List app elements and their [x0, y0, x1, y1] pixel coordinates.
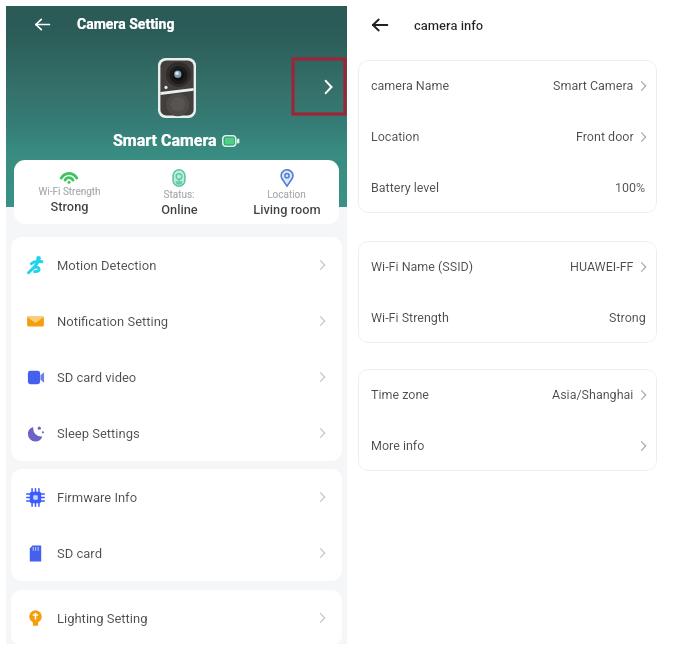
staticText: camera Name — [371, 78, 450, 93]
staticText: More info — [371, 438, 425, 453]
staticText: Camera Setting — [77, 16, 175, 32]
button[interactable]: Location — [358, 111, 657, 162]
staticText: Sleep Settings — [57, 426, 140, 441]
staticText: Wi-Fi Strength — [38, 186, 101, 198]
staticText: Smart Camera — [113, 131, 217, 150]
button[interactable]: Device details — [293, 59, 345, 114]
button[interactable]: Sleep Settings — [11, 405, 342, 461]
staticText: camera info — [414, 18, 484, 33]
staticText: Wi-Fi Name (SSID) — [371, 259, 474, 274]
button[interactable]: SD card video — [11, 349, 342, 405]
button[interactable]: Back — [368, 13, 392, 37]
button[interactable]: Battery level — [358, 162, 657, 213]
staticText: SD card — [57, 546, 102, 561]
staticText: SD card video — [57, 370, 137, 385]
staticText: Lighting Setting — [57, 611, 148, 626]
staticText: Location — [371, 129, 420, 144]
button[interactable]: Wi-Fi Strength — [358, 292, 657, 343]
staticText: Living room — [253, 202, 321, 217]
button[interactable]: Firmware Info — [11, 469, 342, 525]
button[interactable]: More info — [358, 420, 657, 471]
button[interactable]: Wi-Fi Name (SSID) — [358, 241, 657, 292]
button[interactable]: Notification Setting — [11, 293, 342, 349]
staticText: Strong — [609, 310, 646, 325]
staticText: 100% — [615, 180, 646, 195]
button[interactable]: Motion Detection — [11, 237, 342, 293]
staticText: Online — [161, 202, 198, 217]
staticText: HUAWEI-FF — [570, 259, 634, 274]
staticText: Firmware Info — [57, 490, 138, 505]
button[interactable]: Time zone — [358, 369, 657, 420]
button[interactable]: camera Name — [358, 60, 657, 111]
staticText: Front door — [576, 129, 634, 144]
staticText: Location — [267, 189, 306, 201]
button[interactable]: SD card — [11, 525, 342, 581]
button[interactable]: Back — [31, 13, 53, 35]
staticText: Notification Setting — [57, 314, 169, 329]
staticText: Asia/Shanghai — [552, 387, 634, 402]
staticText: Status: — [163, 189, 195, 201]
staticText: Time zone — [371, 387, 429, 402]
staticText: Battery level — [371, 180, 439, 195]
button[interactable]: Lighting Setting — [11, 590, 342, 646]
staticText: Motion Detection — [57, 258, 157, 273]
staticText: Smart Camera — [553, 78, 634, 93]
staticText: Wi-Fi Strength — [371, 310, 449, 325]
staticText: Strong — [50, 199, 89, 214]
